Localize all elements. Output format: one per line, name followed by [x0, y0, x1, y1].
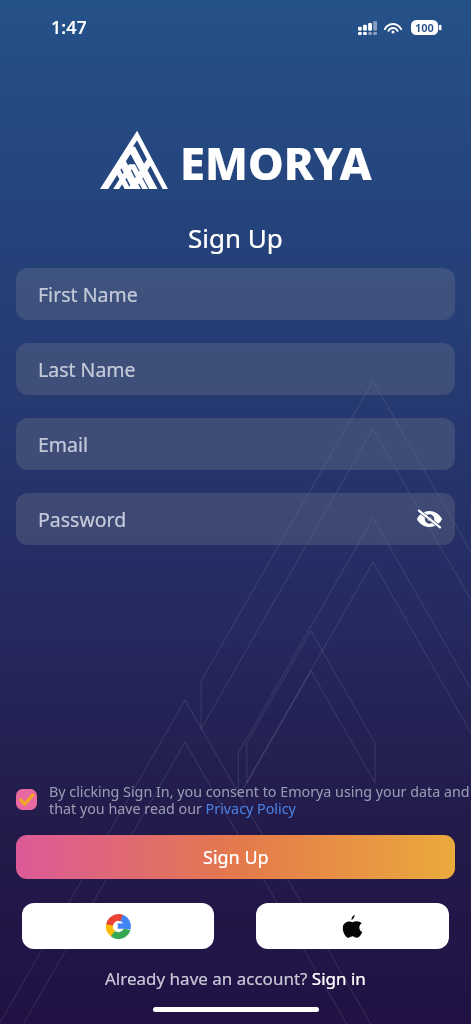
- staticText: Last Name: [38, 356, 136, 383]
- staticText: By clicking Sign In, you consent to Emor…: [49, 782, 471, 818]
- button[interactable]: By clicking Sign In, you consent to Emor…: [0, 777, 471, 817]
- staticText: Sign Up: [203, 845, 269, 870]
- button[interactable]: Already have an account? Sign in: [105, 967, 366, 990]
- staticText: Email: [38, 431, 89, 458]
- button[interactable]: Last Name: [16, 343, 455, 395]
- staticText: Password: [38, 506, 127, 533]
- staticText: Sign Up: [188, 220, 283, 255]
- button[interactable]: Password: [16, 493, 455, 545]
- button[interactable]: Sign up with Google: [22, 903, 214, 949]
- button[interactable]: Email: [16, 418, 455, 470]
- staticText: First Name: [38, 281, 138, 308]
- staticText: 1:47: [51, 15, 87, 40]
- staticText: EMORYA: [180, 132, 372, 193]
- button[interactable]: First Name: [16, 268, 455, 320]
- button[interactable]: Show password: [415, 505, 443, 533]
- button[interactable]: Sign up with Apple: [256, 903, 449, 949]
- staticText: 100: [415, 20, 434, 35]
- button[interactable]: Sign Up: [16, 835, 455, 879]
